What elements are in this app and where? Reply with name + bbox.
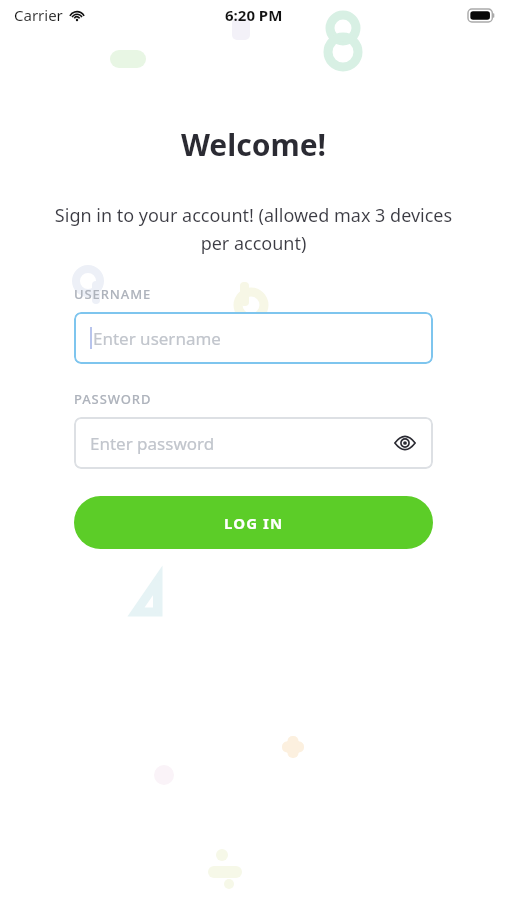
button[interactable]: Show password (391, 429, 419, 457)
button[interactable]: LOG IN (74, 496, 433, 549)
button[interactable]: Enter password (74, 417, 433, 469)
staticText: 6:20 PM (225, 5, 283, 25)
button[interactable]: Enter username (74, 312, 433, 364)
staticText: Sign in to your account! (allowed max 3 … (40, 203, 467, 255)
staticText: Carrier (14, 5, 63, 25)
staticText: LOG IN (224, 513, 284, 533)
staticText: Enter username (93, 327, 419, 350)
staticText: PASSWORD (74, 390, 152, 408)
staticText: Welcome! (0, 124, 507, 165)
staticText: USERNAME (74, 285, 152, 303)
staticText: Enter password (90, 432, 391, 455)
